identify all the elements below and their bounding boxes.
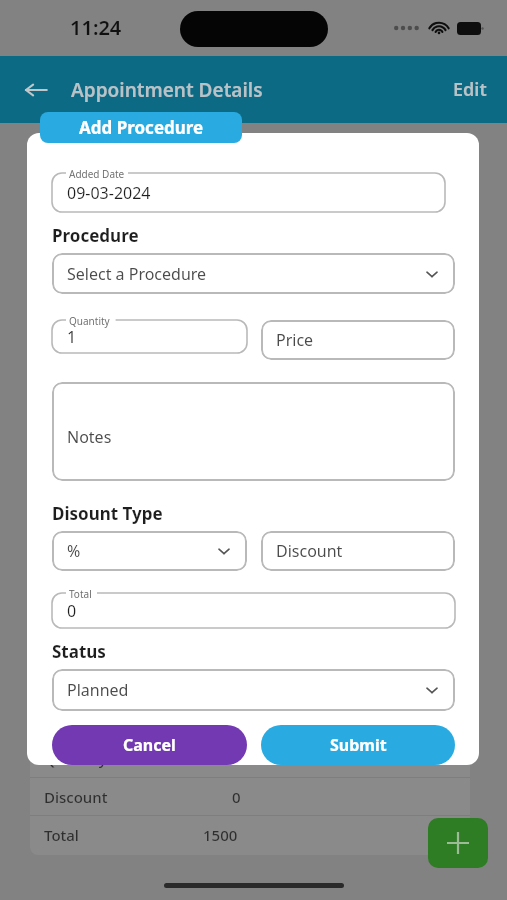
button[interactable]: Cancel xyxy=(52,725,247,765)
staticText: Notes xyxy=(67,426,112,448)
staticText: Discount xyxy=(44,787,108,807)
button[interactable]: Price xyxy=(261,320,455,360)
staticText: Quantity xyxy=(69,314,110,328)
staticText: 1 xyxy=(231,749,240,769)
staticText: Price xyxy=(276,329,314,351)
button[interactable]: % xyxy=(52,531,247,571)
button[interactable]: Add Procedure xyxy=(40,112,242,143)
button[interactable]: Added Date xyxy=(52,166,445,212)
staticText: Disount Type xyxy=(52,502,163,525)
button[interactable]: Back xyxy=(16,70,56,110)
staticText: Discount xyxy=(276,540,343,562)
button[interactable]: Planned xyxy=(52,669,455,711)
button[interactable]: Submit xyxy=(261,725,455,765)
button[interactable]: Discount xyxy=(261,531,455,571)
staticText: 0 xyxy=(67,600,77,622)
staticText: 09-03-2024 xyxy=(67,182,151,204)
button[interactable]: Quantity xyxy=(52,313,247,353)
staticText: Select a Procedure xyxy=(67,263,207,285)
button[interactable]: Select a Procedure xyxy=(52,253,455,294)
staticText: Total xyxy=(44,825,79,845)
staticText: 11:24 xyxy=(70,14,122,41)
staticText: Cancel xyxy=(123,734,176,756)
staticText: Quantity xyxy=(44,749,107,769)
button[interactable]: Edit xyxy=(447,71,493,108)
staticText: Planned xyxy=(67,679,129,701)
staticText: 1500 xyxy=(203,825,238,845)
staticText: Edit xyxy=(453,77,487,102)
staticText: Submit xyxy=(330,734,387,756)
staticText: Appointment Details xyxy=(71,77,263,103)
button[interactable]: Notes xyxy=(52,382,455,481)
staticText: Procedure xyxy=(52,224,139,247)
staticText: % xyxy=(67,540,81,562)
staticText: Total xyxy=(69,587,92,601)
staticText: Add Procedure xyxy=(79,116,204,139)
staticText: Status xyxy=(52,640,106,663)
staticText: Added Date xyxy=(69,167,125,181)
button[interactable]: Total xyxy=(52,586,455,628)
button[interactable]: Add xyxy=(428,818,488,868)
staticText: 1 xyxy=(67,326,77,348)
staticText: 0 xyxy=(232,787,241,807)
